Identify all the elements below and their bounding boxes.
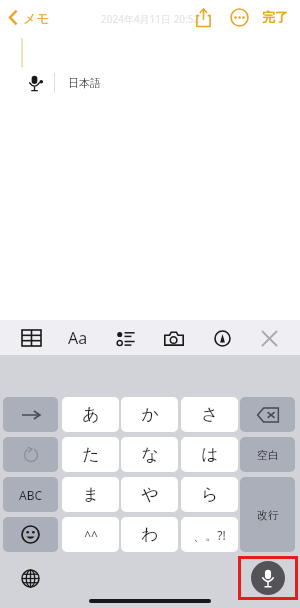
button[interactable]: Close xyxy=(252,321,286,355)
button[interactable]: ま xyxy=(62,477,119,512)
staticText: さ xyxy=(201,404,219,425)
button[interactable]: Dictation xyxy=(14,67,54,98)
button[interactable]: た xyxy=(62,437,119,472)
button[interactable]: や xyxy=(121,477,178,512)
staticText: な xyxy=(141,444,159,465)
button[interactable]: 完了 xyxy=(258,3,292,31)
staticText: メモ xyxy=(23,10,50,26)
staticText: 2024年4月11日 20:52 xyxy=(101,12,200,26)
button[interactable]: Switch keyboard xyxy=(12,560,48,596)
staticText: か xyxy=(141,404,159,425)
staticText: ま xyxy=(82,484,100,505)
button[interactable]: Next xyxy=(3,397,58,432)
button[interactable]: Markup xyxy=(205,321,239,355)
button[interactable]: Delete xyxy=(240,397,295,432)
button[interactable]: More options xyxy=(224,2,254,32)
button[interactable]: わ xyxy=(121,517,178,552)
button[interactable]: ABC xyxy=(3,477,58,512)
staticText: ら xyxy=(201,484,219,505)
button[interactable]: Text format xyxy=(61,321,95,355)
button[interactable]: は xyxy=(181,437,238,472)
button[interactable]: か xyxy=(121,397,178,432)
staticText: Aa xyxy=(68,327,88,349)
staticText: は xyxy=(201,444,219,465)
staticText: ABC xyxy=(19,487,43,503)
button[interactable]: 、。?! xyxy=(181,517,238,552)
staticText: た xyxy=(82,444,100,465)
button[interactable]: メモ xyxy=(6,5,52,30)
staticText: 、。?! xyxy=(193,527,226,543)
staticText: 空白 xyxy=(257,448,279,462)
button[interactable]: ^^ xyxy=(62,517,119,552)
button[interactable]: Emoji xyxy=(3,517,58,552)
button[interactable]: Checklist xyxy=(109,321,143,355)
staticText: わ xyxy=(141,524,159,545)
button[interactable]: 空白 xyxy=(240,437,295,472)
button[interactable]: 日本語 xyxy=(55,67,113,98)
button[interactable]: Camera xyxy=(157,321,191,355)
button[interactable]: Dictation microphone xyxy=(251,561,285,595)
button[interactable]: な xyxy=(121,437,178,472)
staticText: ^^ xyxy=(84,527,98,543)
button[interactable]: Undo xyxy=(3,437,58,472)
button[interactable]: ら xyxy=(181,477,238,512)
staticText: 完了 xyxy=(262,9,288,25)
button[interactable]: あ xyxy=(62,397,119,432)
button[interactable]: Share xyxy=(188,2,218,32)
staticText: や xyxy=(141,484,159,505)
staticText: あ xyxy=(82,404,100,425)
button[interactable]: 改行 xyxy=(240,477,295,552)
staticText: 日本語 xyxy=(68,76,101,90)
staticText: 改行 xyxy=(257,508,279,522)
button[interactable]: さ xyxy=(181,397,238,432)
button[interactable]: Table xyxy=(14,321,48,355)
